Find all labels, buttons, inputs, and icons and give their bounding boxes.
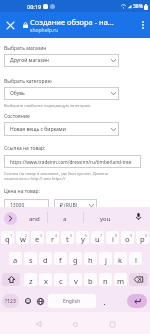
staticText: Обувь <box>10 90 25 97</box>
staticText: 2 <box>25 233 28 238</box>
button[interactable]: q <box>1 231 14 244</box>
button[interactable]: Backspace <box>129 273 148 286</box>
button[interactable]: e <box>31 231 44 244</box>
staticText: ?123 <box>5 298 16 305</box>
staticText: d <box>43 255 48 265</box>
staticText: 0 <box>145 233 148 238</box>
staticText: 6 <box>85 233 88 238</box>
staticText: 38% <box>133 3 143 10</box>
staticText: 1 <box>10 233 13 238</box>
button[interactable]: r <box>46 231 59 244</box>
button[interactable]: s <box>24 252 37 265</box>
button[interactable]: English <box>48 294 96 308</box>
staticText: 3 <box>40 233 43 238</box>
button[interactable]: y <box>76 231 89 244</box>
button[interactable]: Enter <box>127 294 147 308</box>
button[interactable]: and <box>22 207 47 230</box>
staticText: l <box>135 255 137 265</box>
button[interactable]: Обувь <box>4 87 119 100</box>
staticText: k <box>118 255 123 265</box>
staticText: 8 <box>115 233 118 238</box>
staticText: z <box>29 276 33 286</box>
button[interactable]: j <box>99 252 112 265</box>
staticText: Создание обзора - на... <box>30 17 114 27</box>
button[interactable]: Period <box>98 294 110 308</box>
staticText: g <box>73 255 78 265</box>
button[interactable]: ₽ (RUB) <box>54 199 97 212</box>
staticText: e <box>35 234 40 244</box>
staticText: 7 <box>100 233 103 238</box>
button[interactable]: m <box>114 273 127 286</box>
staticText: Цена на товар: <box>4 188 40 195</box>
button[interactable]: a <box>9 252 22 265</box>
button[interactable]: g <box>69 252 82 265</box>
button[interactable]: t <box>61 231 74 244</box>
staticText: Ссылка на товар в магазине, где был купл… <box>4 171 109 181</box>
button[interactable]: Switch language <box>33 294 47 308</box>
button[interactable]: 13000 <box>4 199 49 212</box>
staticText: ₽ (RUB) <box>60 202 78 209</box>
staticText: i <box>112 234 114 244</box>
button[interactable]: Back <box>26 312 50 334</box>
button[interactable]: i <box>106 231 119 244</box>
staticText: b <box>88 276 93 286</box>
button[interactable]: b <box>84 273 97 286</box>
staticText: Состояние <box>4 113 30 120</box>
staticText: Новая вещь с бирками <box>10 126 66 133</box>
button[interactable]: Новая вещь с бирками <box>4 122 119 136</box>
button[interactable]: u <box>91 231 104 244</box>
staticText: o <box>125 234 130 244</box>
staticText: 9 <box>130 233 133 238</box>
staticText: v <box>74 276 78 286</box>
staticText: y <box>81 234 85 244</box>
button[interactable]: h <box>84 252 97 265</box>
staticText: you <box>100 215 111 223</box>
button[interactable]: More options <box>136 12 150 38</box>
staticText: 13000 <box>10 202 25 209</box>
staticText: p <box>140 234 145 244</box>
button[interactable]: f <box>54 252 67 265</box>
staticText: a <box>63 215 67 223</box>
staticText: c <box>59 276 63 286</box>
button[interactable]: n <box>99 273 112 286</box>
staticText: x <box>44 276 48 286</box>
button[interactable]: Close <box>0 12 20 38</box>
button[interactable]: https://www.tradeinn.com/dressinn/ru/tim… <box>4 155 141 168</box>
button[interactable]: z <box>24 273 37 286</box>
button[interactable]: o <box>121 231 134 244</box>
button[interactable]: Recent apps <box>100 312 124 334</box>
button[interactable]: v <box>69 273 82 286</box>
staticText: Выбрать категорию <box>4 78 52 85</box>
button[interactable]: l <box>129 252 142 265</box>
button[interactable]: Home <box>63 312 87 334</box>
button[interactable]: w <box>16 231 29 244</box>
button[interactable]: Другой магазин <box>4 54 119 67</box>
staticText: shophelp.ru <box>30 27 59 34</box>
button[interactable]: Emoji <box>21 294 35 308</box>
staticText: n <box>103 276 108 286</box>
staticText: 00:19 <box>27 3 42 10</box>
button[interactable]: x <box>39 273 52 286</box>
button[interactable]: d <box>39 252 52 265</box>
button[interactable]: a <box>47 207 83 230</box>
staticText: Выбрать магазин <box>4 45 47 52</box>
button[interactable]: Expand suggestions <box>2 210 19 227</box>
button[interactable]: k <box>114 252 127 265</box>
staticText: English <box>63 298 81 305</box>
staticText: t <box>66 234 69 244</box>
button[interactable]: c <box>54 273 67 286</box>
button[interactable]: p <box>136 231 149 244</box>
button[interactable]: Voice input <box>131 209 145 223</box>
staticText: s <box>29 255 33 265</box>
staticText: Другой магазин <box>10 57 49 64</box>
button[interactable]: you <box>83 207 128 230</box>
staticText: m <box>117 276 125 286</box>
button[interactable]: Shift <box>2 273 20 286</box>
staticText: 5 <box>70 233 73 238</box>
button[interactable]: ?123 <box>2 294 19 308</box>
staticText: r <box>51 234 55 244</box>
staticText: f <box>59 255 62 265</box>
staticText: https://www.tradeinn.com/dressinn/ru/tim… <box>10 159 132 165</box>
staticText: Выберите наиболее подходящую категорию <box>4 103 91 108</box>
staticText: j <box>105 255 107 265</box>
